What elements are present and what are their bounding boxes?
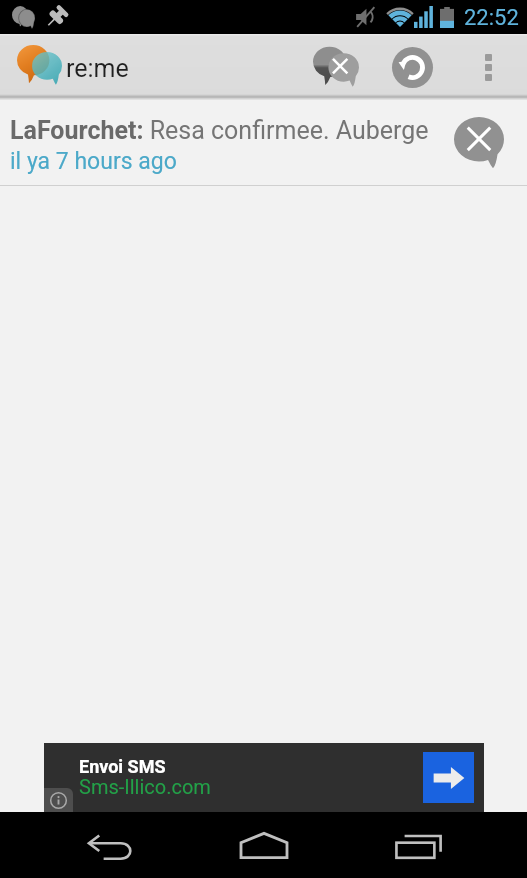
button[interactable]: Dismiss message: [444, 100, 514, 186]
button[interactable]: Open advertisement: [423, 752, 474, 803]
button[interactable]: Back: [66, 812, 156, 878]
button[interactable]: Ad information: [44, 788, 73, 812]
staticText: 22:52: [464, 5, 519, 31]
button[interactable]: Refresh: [376, 34, 448, 100]
button[interactable]: re:me: [8, 34, 138, 100]
staticText: re:me: [66, 54, 129, 83]
button[interactable]: More options: [460, 34, 517, 100]
button[interactable]: Recent apps: [374, 812, 464, 878]
button[interactable]: Clear messages: [300, 34, 372, 100]
staticText: Sms-Illico.com: [79, 775, 211, 798]
button[interactable]: Home: [219, 812, 309, 878]
button[interactable]: Envoi SMS: [44, 743, 484, 812]
staticText: LaFourchet: Resa confirmee. Auberge: [10, 116, 429, 145]
button[interactable]: LaFourchet: Resa confirmee. Auberge: [0, 100, 527, 186]
staticText: Envoi SMS: [79, 756, 166, 777]
staticText: il ya 7 hours ago: [10, 148, 177, 175]
